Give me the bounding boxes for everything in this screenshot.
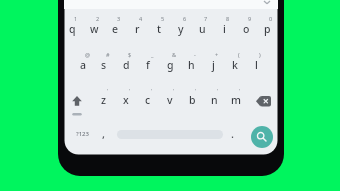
button[interactable]: r <box>125 20 149 38</box>
staticText: $ <box>128 51 132 58</box>
button[interactable]: k <box>223 56 247 74</box>
button[interactable]: 6 <box>173 9 197 27</box>
button[interactable]: p <box>255 20 279 38</box>
staticText: h <box>188 58 195 72</box>
staticText: 5 <box>161 15 165 22</box>
button[interactable]: ' <box>228 82 252 100</box>
button[interactable]: ' <box>118 82 142 100</box>
button[interactable]: b <box>180 91 204 109</box>
staticText: g <box>167 58 174 72</box>
staticText: j <box>212 58 215 72</box>
button[interactable]: & <box>162 45 186 63</box>
button[interactable]: d <box>114 56 138 74</box>
button[interactable]: q <box>60 20 84 38</box>
button[interactable] <box>251 126 273 148</box>
staticText: w <box>90 22 99 36</box>
staticText: 2 <box>96 15 100 22</box>
button[interactable]: l <box>244 56 268 74</box>
button[interactable]: 7 <box>194 9 218 27</box>
staticText: q <box>69 22 76 36</box>
staticText: 8 <box>226 15 230 22</box>
button[interactable]: u <box>190 20 214 38</box>
button[interactable]: e <box>103 20 127 38</box>
staticText: 9 <box>248 15 252 22</box>
button[interactable]: g <box>158 56 182 74</box>
button[interactable]: ( <box>227 45 251 63</box>
staticText: m <box>231 93 241 107</box>
button[interactable]: # <box>96 45 120 63</box>
staticText: l <box>255 58 258 72</box>
staticText: ' <box>173 88 175 95</box>
staticText: e <box>112 22 119 36</box>
button[interactable]: x <box>114 91 138 109</box>
button[interactable]: s <box>92 56 116 74</box>
button[interactable]: - <box>183 45 207 63</box>
staticText: d <box>123 58 130 72</box>
staticText: z <box>101 93 107 107</box>
staticText: i <box>223 22 226 36</box>
button[interactable]: + <box>205 45 229 63</box>
staticText: y <box>178 22 184 36</box>
staticText: ' <box>239 88 241 95</box>
staticText: , <box>102 126 106 141</box>
staticText: 4 <box>139 15 143 22</box>
button[interactable]: c <box>136 91 160 109</box>
button[interactable]: t <box>147 20 171 38</box>
staticText: x <box>123 93 129 107</box>
staticText: . <box>231 126 234 141</box>
button[interactable]: ' <box>96 82 120 100</box>
button[interactable]: z <box>92 91 116 109</box>
button[interactable]: 1 <box>64 9 88 27</box>
staticText: ' <box>129 88 131 95</box>
button[interactable]: h <box>179 56 203 74</box>
staticText: # <box>106 51 110 58</box>
staticText: a <box>80 58 87 72</box>
staticText: + <box>215 51 219 58</box>
button[interactable]: 3 <box>107 9 131 27</box>
button[interactable]: ' <box>140 82 164 100</box>
button[interactable]: 0 <box>259 9 283 27</box>
button[interactable]: 9 <box>238 9 262 27</box>
button[interactable]: w <box>82 20 106 38</box>
staticText: b <box>189 93 196 107</box>
staticText: s <box>101 58 107 72</box>
button[interactable]: $ <box>118 45 142 63</box>
button[interactable]: 5 <box>151 9 175 27</box>
button[interactable]: 4 <box>129 9 153 27</box>
button[interactable]: m <box>224 91 248 109</box>
button[interactable] <box>255 95 272 107</box>
button[interactable]: ' <box>162 82 186 100</box>
staticText: k <box>232 58 238 72</box>
button[interactable] <box>69 94 85 108</box>
staticText: ) <box>259 51 261 58</box>
button[interactable]: f <box>136 56 160 74</box>
button[interactable]: n <box>202 91 226 109</box>
staticText: c <box>145 93 151 107</box>
staticText: u <box>199 22 206 36</box>
button[interactable]: v <box>158 91 182 109</box>
button[interactable]: ' <box>184 82 208 100</box>
button[interactable]: 8 <box>216 9 240 27</box>
button[interactable]: . <box>220 124 244 142</box>
button[interactable]: y <box>169 20 193 38</box>
button[interactable]: 2 <box>86 9 110 27</box>
staticText: _ <box>151 51 154 58</box>
button[interactable]: o <box>234 20 258 38</box>
staticText: t <box>157 22 162 36</box>
button[interactable]: i <box>212 20 236 38</box>
button[interactable]: _ <box>140 45 164 63</box>
button[interactable]: j <box>201 56 225 74</box>
staticText: ' <box>151 88 153 95</box>
button[interactable]: , <box>92 124 116 142</box>
button[interactable]: ) <box>248 45 272 63</box>
staticText: - <box>194 51 196 58</box>
staticText: r <box>135 22 140 36</box>
button[interactable]: ?123 <box>70 125 94 143</box>
button[interactable]: @ <box>75 45 99 63</box>
staticText: 1 <box>74 15 78 22</box>
button[interactable]: ' <box>206 82 230 100</box>
button[interactable]: a <box>71 56 95 74</box>
staticText: 3 <box>117 15 121 22</box>
staticText: 6 <box>183 15 187 22</box>
